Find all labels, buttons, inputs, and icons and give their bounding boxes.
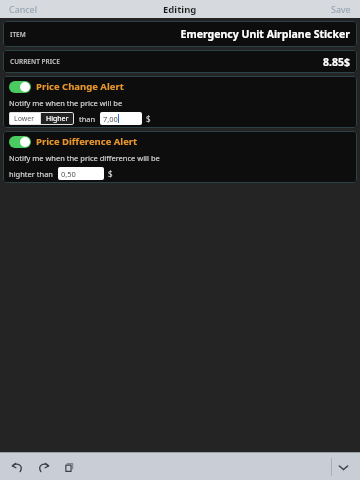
staticText: Higher bbox=[46, 114, 69, 124]
staticText: $ bbox=[108, 168, 113, 179]
staticText: Cancel bbox=[9, 3, 38, 15]
staticText: Editing bbox=[163, 3, 197, 16]
staticText: Price Change Alert bbox=[36, 80, 124, 93]
staticText: CURRENT PRICE bbox=[10, 57, 60, 66]
button[interactable]: Paste bbox=[58, 456, 80, 478]
button[interactable]: CURRENT PRICE bbox=[3, 50, 357, 73]
staticText: Notify me when the price difference will… bbox=[9, 153, 160, 163]
staticText: 7,00 bbox=[103, 114, 118, 124]
staticText: 8.85$ bbox=[323, 55, 350, 69]
staticText: Price Difference Alert bbox=[36, 135, 138, 148]
staticText: Emergency Unit Airplane Sticker bbox=[180, 27, 350, 41]
button[interactable]: Lower bbox=[9, 112, 40, 125]
button[interactable]: Higher bbox=[41, 112, 74, 125]
staticText: $ bbox=[146, 113, 151, 124]
button[interactable]: Cancel bbox=[4, 0, 43, 18]
button[interactable]: Toggle alert bbox=[9, 136, 31, 148]
button[interactable]: Hide keyboard bbox=[332, 456, 354, 478]
button[interactable]: 0,50 bbox=[58, 167, 104, 180]
button[interactable]: Save bbox=[326, 0, 356, 18]
staticText: Lower bbox=[14, 114, 35, 124]
button[interactable]: 7,00 bbox=[100, 112, 142, 125]
staticText: ITEM bbox=[10, 30, 26, 39]
staticText: than bbox=[79, 114, 96, 124]
button[interactable]: Toggle alert bbox=[9, 81, 31, 93]
staticText: 0,50 bbox=[61, 169, 76, 179]
staticText: Save bbox=[331, 3, 351, 15]
staticText: Notify me when the price will be bbox=[9, 98, 123, 108]
button[interactable]: ITEM bbox=[3, 21, 357, 47]
button[interactable]: Redo bbox=[32, 456, 54, 478]
button[interactable]: Undo bbox=[6, 456, 28, 478]
staticText: highter than bbox=[9, 169, 53, 179]
